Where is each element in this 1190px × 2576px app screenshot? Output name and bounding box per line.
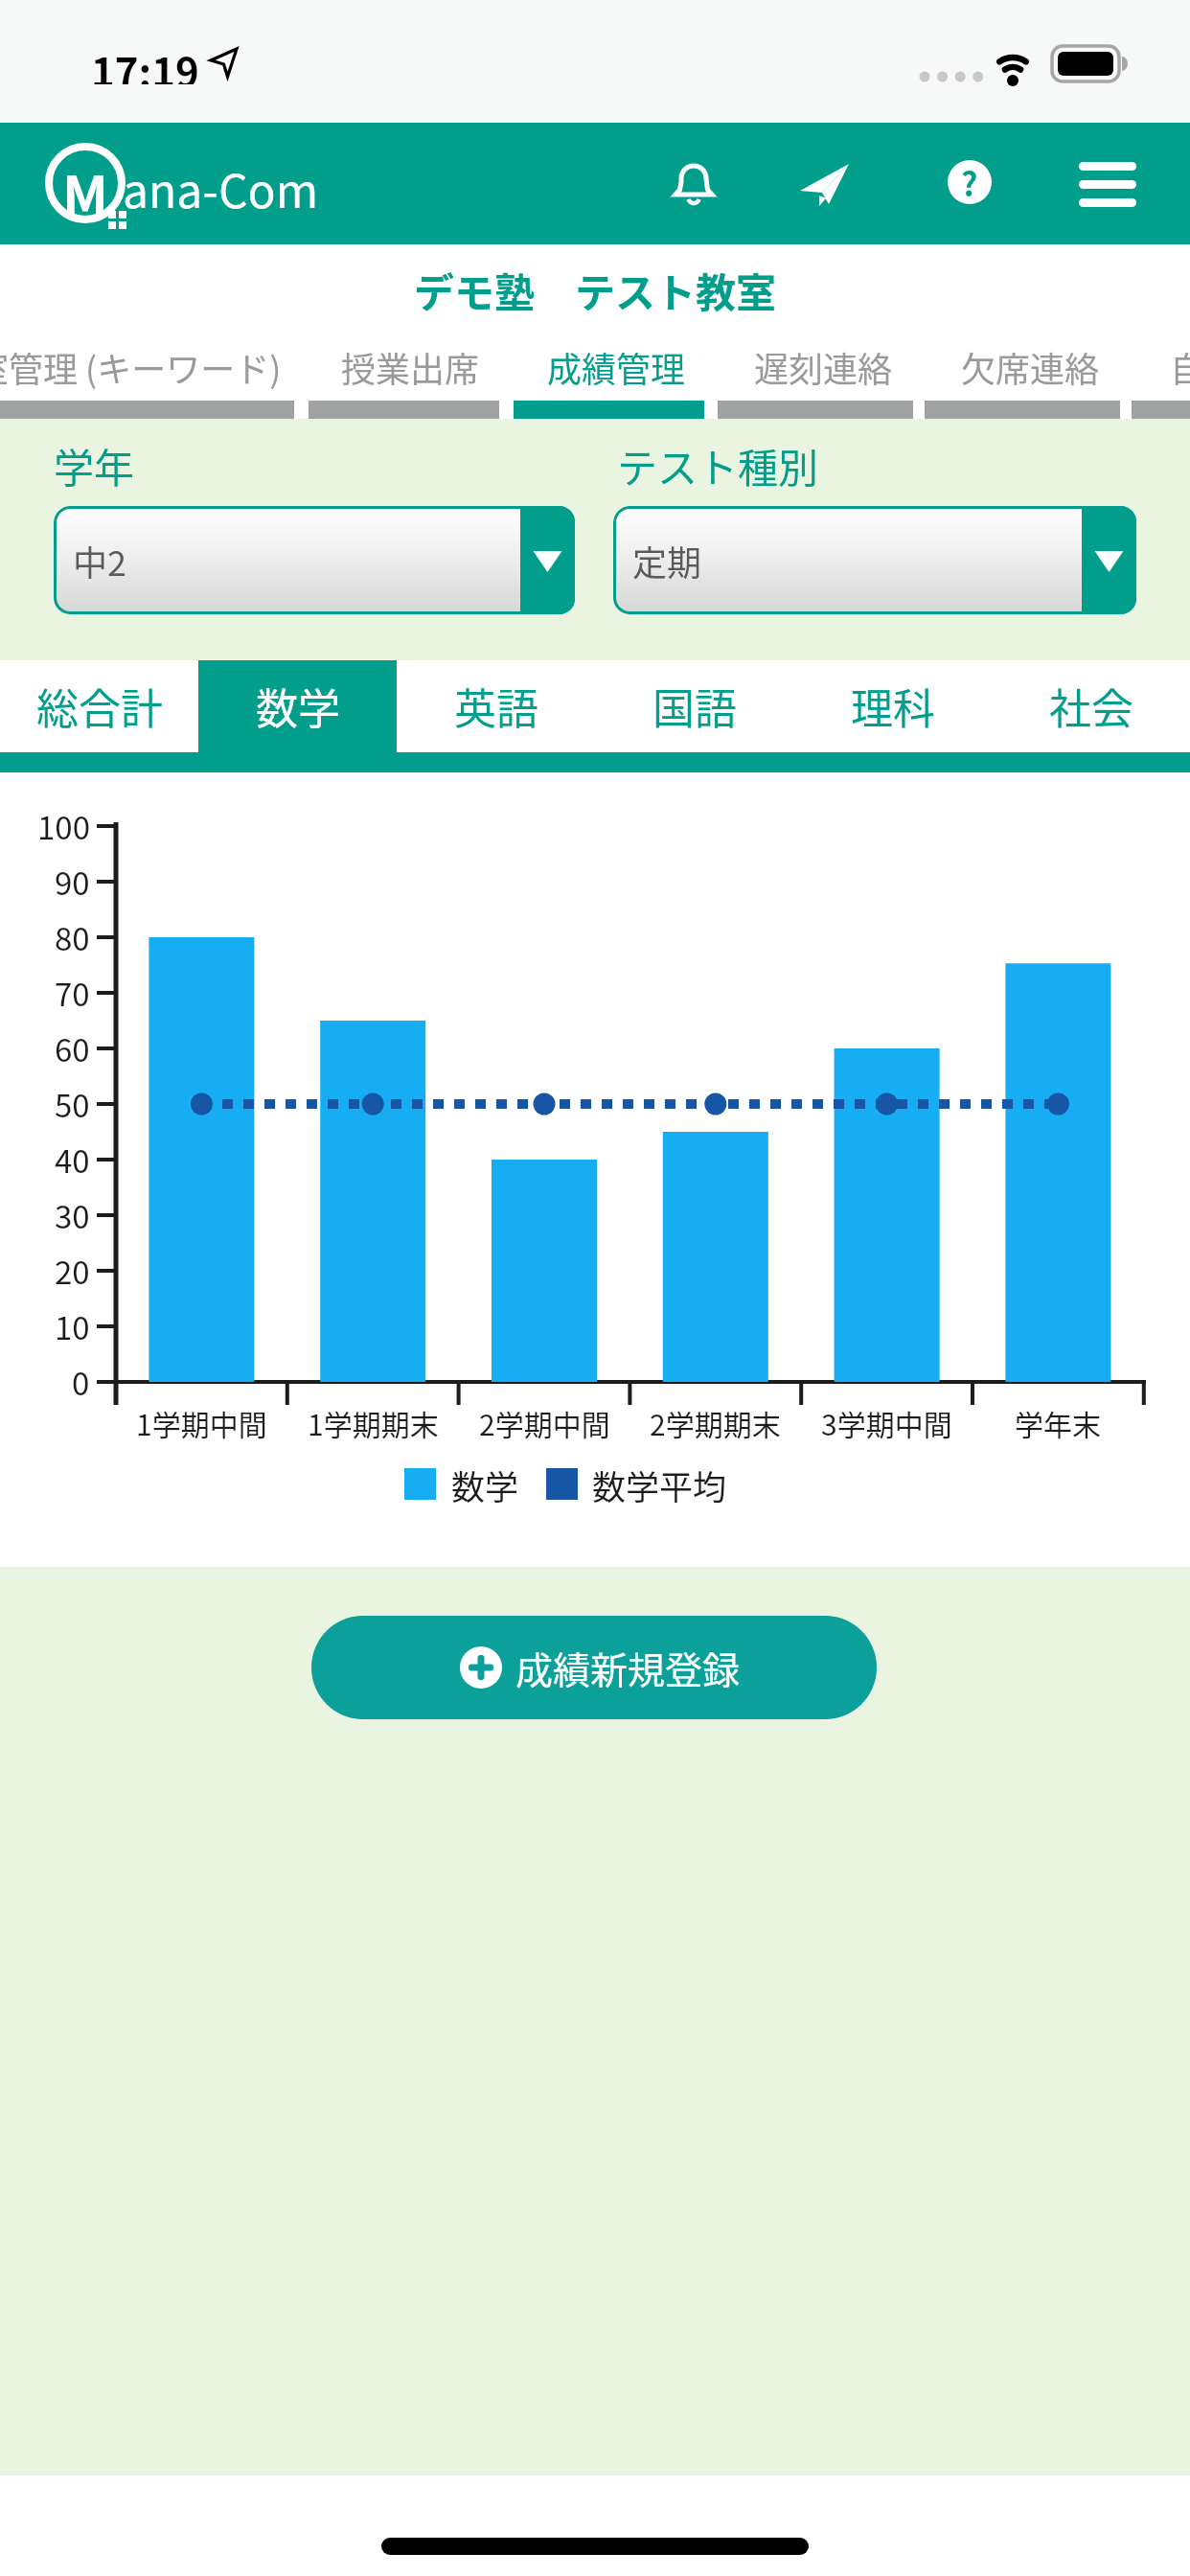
staticText: 30	[55, 1192, 90, 1238]
button[interactable]	[931, 144, 1008, 220]
staticText: 英語	[454, 676, 538, 737]
button[interactable]: 社会	[992, 660, 1190, 752]
staticText: 総合計	[36, 676, 163, 737]
staticText: 2学期期末	[650, 1402, 781, 1443]
button[interactable]: 理科	[793, 660, 992, 752]
button[interactable]: 中2	[54, 506, 575, 614]
staticText: 国語	[652, 676, 737, 737]
staticText: 成績管理	[547, 342, 686, 392]
staticText: 90	[55, 859, 90, 905]
staticText: 中2	[73, 536, 126, 586]
staticText: 社会	[1049, 676, 1133, 737]
button[interactable]	[718, 336, 913, 419]
staticText: 70	[55, 970, 90, 1016]
staticText: 遅刻連絡	[754, 342, 893, 392]
staticText: ana-Com	[123, 154, 319, 212]
staticText: 10	[55, 1303, 90, 1349]
button[interactable]	[1132, 336, 1190, 419]
button[interactable]: 総合計	[0, 660, 198, 752]
staticText: 学年末	[1015, 1402, 1101, 1443]
staticText: 欠席連絡	[961, 342, 1100, 392]
button[interactable]	[1069, 144, 1146, 220]
staticText: 1学期期末	[308, 1402, 439, 1443]
staticText: 50	[55, 1081, 90, 1127]
staticText: 数学	[256, 676, 340, 737]
button[interactable]: 定期	[613, 506, 1136, 614]
staticText: 40	[55, 1137, 90, 1183]
staticText: 自	[1170, 342, 1190, 392]
staticText: 数学	[451, 1460, 519, 1506]
staticText: 数学平均	[592, 1460, 727, 1506]
staticText: 17:19	[91, 40, 199, 84]
button[interactable]: 数学	[198, 660, 397, 752]
button[interactable]: 英語	[397, 660, 595, 752]
staticText: 20	[55, 1248, 90, 1294]
staticText: 0	[72, 1359, 90, 1405]
staticText: 理科	[851, 676, 935, 737]
button[interactable]	[655, 144, 732, 220]
staticText: 学年	[54, 436, 135, 490]
button[interactable]: 成績新規登録	[311, 1616, 877, 1719]
staticText: 80	[55, 914, 90, 960]
staticText: デモ塾 テスト教室	[414, 261, 777, 319]
staticText: テスト種別	[617, 436, 819, 490]
button[interactable]	[514, 336, 704, 419]
staticText: 60	[55, 1025, 90, 1071]
staticText: 室管理 (キーワード)	[0, 342, 282, 392]
button[interactable]	[925, 336, 1120, 419]
staticText: 1学期中間	[136, 1402, 267, 1443]
staticText: 授業出席	[341, 342, 480, 392]
staticText: ?	[961, 159, 978, 206]
button[interactable]: 国語	[595, 660, 793, 752]
button[interactable]	[787, 144, 863, 220]
staticText: 定期	[632, 536, 702, 586]
staticText: 3学期中間	[821, 1402, 952, 1443]
staticText: 2学期中間	[479, 1402, 610, 1443]
button[interactable]	[0, 336, 294, 419]
staticText: M	[62, 152, 108, 214]
staticText: 成績新規登録	[515, 1641, 741, 1694]
staticText: 100	[37, 803, 90, 849]
button[interactable]	[309, 336, 499, 419]
